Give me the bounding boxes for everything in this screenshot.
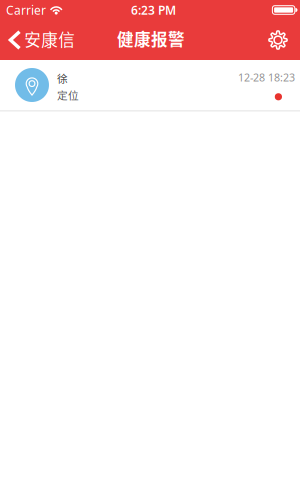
staticText: 12-28 18:23 — [238, 70, 295, 84]
staticText: Carrier — [6, 2, 46, 18]
staticText: 安康信 — [24, 27, 75, 51]
staticText: 6:23 PM — [131, 2, 176, 18]
button[interactable]: 徐 — [0, 60, 300, 112]
staticText: 健康报警 — [117, 26, 185, 50]
staticText: 徐 — [57, 70, 68, 86]
button[interactable]: 安康信 — [0, 20, 83, 60]
button[interactable]: Settings — [254, 20, 300, 60]
staticText: 定位 — [57, 87, 79, 103]
